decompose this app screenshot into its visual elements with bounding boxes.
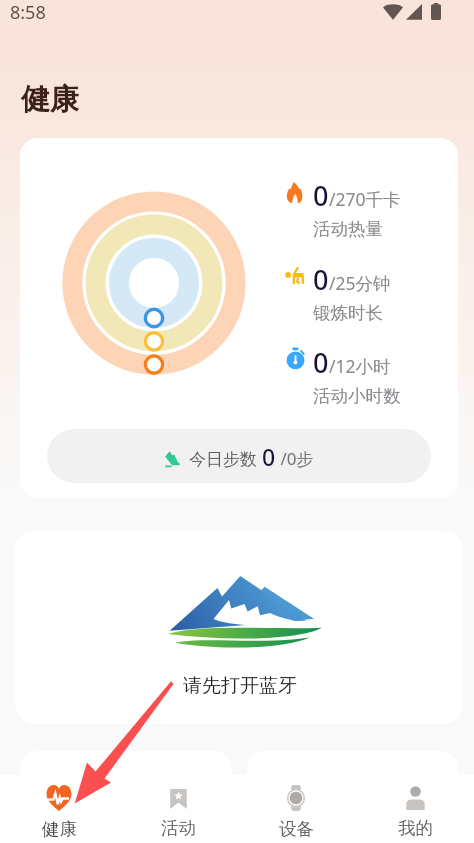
staticText: /12小时 (329, 354, 391, 378)
button[interactable]: 我的 (356, 775, 474, 839)
staticText: 健康 (42, 818, 77, 840)
button[interactable]: 健康 (0, 775, 118, 840)
button[interactable]: 今日步数 (47, 429, 431, 483)
staticText: 请先打开蓝牙 (183, 674, 297, 698)
staticText: 0 (262, 441, 276, 472)
staticText: 0 (313, 177, 329, 214)
staticText: 活动小时数 (313, 385, 401, 407)
button[interactable]: 活动 (119, 775, 237, 839)
staticText: 设备 (279, 818, 314, 840)
staticText: /270千卡 (329, 187, 401, 211)
staticText: /0步 (276, 447, 314, 470)
staticText: 8:58 (10, 0, 46, 25)
staticText: 活动 (161, 817, 196, 839)
button[interactable]: 设备 (237, 775, 355, 840)
staticText: 健康 (21, 81, 79, 118)
staticText: 活动热量 (313, 218, 383, 240)
staticText: /25分钟 (329, 271, 391, 295)
staticText: 锻炼时长 (313, 302, 383, 324)
staticText: 0 (313, 344, 329, 381)
staticText: 我的 (398, 817, 433, 839)
staticText: 0 (313, 261, 329, 298)
staticText: 今日步数 (189, 447, 262, 470)
